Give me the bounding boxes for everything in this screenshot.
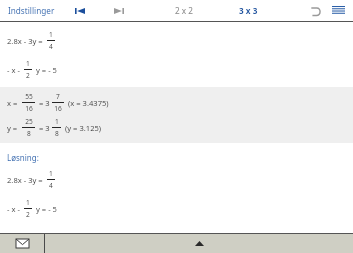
staticText: 2.8x - 3y = bbox=[7, 175, 45, 185]
button[interactable]: Previous bbox=[71, 2, 89, 20]
staticText: 2 bbox=[26, 71, 30, 80]
staticText: 16 bbox=[25, 104, 33, 113]
staticText: 1 bbox=[49, 169, 53, 178]
button[interactable]: Menu bbox=[327, 0, 349, 21]
staticText: 2.8x - 3y = bbox=[7, 36, 45, 46]
button[interactable]: Indstillinger bbox=[6, 3, 57, 18]
staticText: 1 bbox=[55, 117, 59, 126]
staticText: 55 bbox=[25, 92, 33, 101]
staticText: 2 bbox=[26, 210, 30, 219]
staticText: 4 bbox=[49, 181, 53, 190]
staticText: 25 bbox=[25, 117, 33, 126]
staticText: 8 bbox=[27, 129, 31, 138]
staticText: = 3 bbox=[37, 98, 50, 108]
staticText: 4 bbox=[49, 42, 53, 51]
staticText: 1 bbox=[26, 59, 30, 68]
staticText: y = - 5 bbox=[34, 204, 57, 214]
staticText: 2 x 2 bbox=[175, 5, 193, 16]
staticText: (y = 3.125) bbox=[63, 123, 102, 133]
staticText: 1 bbox=[26, 198, 30, 207]
button[interactable]: 3 x 3 bbox=[236, 3, 261, 18]
button[interactable]: 2 x 2 bbox=[172, 3, 196, 18]
staticText: x = bbox=[7, 98, 20, 108]
staticText: Indstillinger bbox=[8, 5, 55, 16]
staticText: 8 bbox=[55, 129, 59, 138]
button[interactable]: Undo bbox=[305, 1, 325, 21]
staticText: (x = 3.4375) bbox=[66, 98, 109, 108]
button[interactable]: Next bbox=[110, 2, 128, 20]
staticText: 16 bbox=[54, 104, 62, 113]
staticText: 1 bbox=[49, 30, 53, 39]
staticText: 7 bbox=[56, 92, 60, 101]
staticText: - x - bbox=[7, 65, 22, 75]
staticText: y = - 5 bbox=[34, 65, 57, 75]
button[interactable]: Expand bbox=[45, 234, 353, 253]
staticText: = 3 bbox=[37, 123, 50, 133]
staticText: - x - bbox=[7, 204, 22, 214]
staticText: y = bbox=[7, 123, 20, 133]
staticText: Løsning: bbox=[7, 152, 39, 163]
button[interactable]: Messages bbox=[12, 234, 32, 253]
staticText: 3 x 3 bbox=[239, 5, 258, 16]
